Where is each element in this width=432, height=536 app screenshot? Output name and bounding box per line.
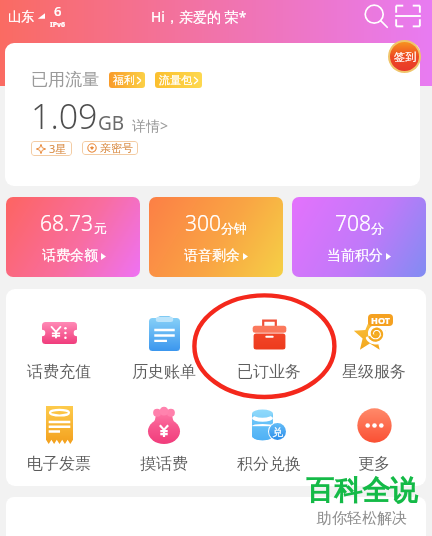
button[interactable]: Scan [393, 1, 423, 31]
staticText: 兑 [272, 425, 283, 439]
button[interactable]: 300 [149, 197, 283, 277]
staticText: 语音剩余 [184, 247, 240, 265]
staticText: 话费充值 [27, 362, 91, 382]
staticText: 300 [185, 209, 221, 238]
staticText: 已用流量 [31, 69, 99, 90]
button[interactable]: HOT [321, 312, 426, 382]
staticText: 6 [54, 2, 62, 20]
button[interactable]: Search [361, 1, 391, 31]
staticText: 68.73 [40, 209, 94, 238]
staticText: GB [98, 110, 125, 136]
staticText: Hi，亲爱的 荣* [151, 7, 247, 26]
staticText: 已订业务 [237, 362, 301, 382]
staticText: 历史账单 [132, 362, 196, 382]
button[interactable]: 已订业务 [216, 312, 321, 382]
staticText: 亲密号 [100, 141, 133, 155]
staticText: 详情> [132, 116, 169, 135]
staticText: 积分兑换 [237, 454, 301, 474]
button[interactable]: 历史账单 [111, 312, 216, 382]
button[interactable]: 电子发票 [6, 404, 111, 474]
button[interactable]: 68.73 [6, 197, 140, 277]
staticText: 福利 [113, 73, 135, 87]
button[interactable]: 福利 [109, 72, 145, 88]
staticText: 分钟 [221, 220, 247, 236]
button[interactable]: 3星 [31, 141, 72, 156]
staticText: 708 [335, 209, 371, 238]
button[interactable]: 摸话费 [111, 404, 216, 474]
staticText: 1.09 [31, 93, 98, 139]
button[interactable]: 亲密号 [82, 141, 138, 155]
button[interactable]: 已用流量 [5, 43, 420, 186]
button[interactable]: 流量包 [155, 72, 202, 88]
staticText: 话费余额 [42, 247, 98, 265]
staticText: 助你轻松解决 [317, 509, 407, 528]
staticText: 星级服务 [342, 362, 406, 382]
staticText: HOT [371, 314, 390, 326]
staticText: 百科全说 [306, 473, 418, 508]
button[interactable]: 兑 [216, 404, 321, 474]
staticText: 3星 [49, 141, 67, 156]
button[interactable]: 更多 [321, 404, 426, 474]
staticText: IPv6 [50, 20, 66, 30]
staticText: 更多 [358, 454, 390, 474]
staticText: 摸话费 [140, 454, 188, 474]
staticText: 元 [94, 220, 107, 236]
staticText: 当前积分 [327, 247, 383, 265]
button[interactable]: 话费充值 [6, 312, 111, 382]
staticText: 电子发票 [27, 454, 91, 474]
staticText: 分 [371, 220, 384, 236]
button[interactable]: 签到 [390, 42, 419, 71]
staticText: 山东 [8, 8, 34, 24]
staticText: 流量包 [159, 73, 192, 87]
button[interactable]: 708 [292, 197, 426, 277]
staticText: 签到 [394, 50, 416, 64]
